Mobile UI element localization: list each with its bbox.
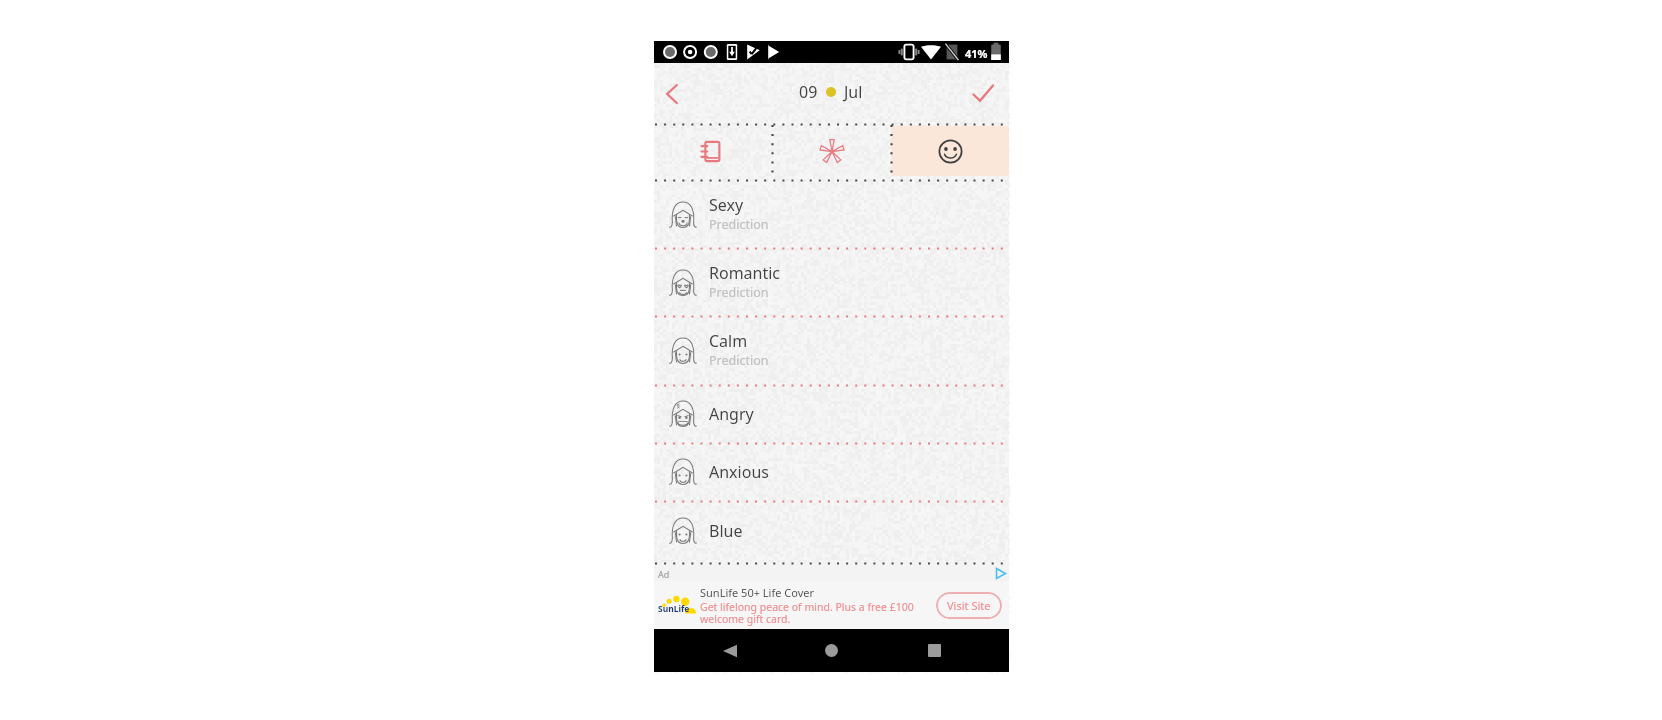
button[interactable]: Home — [809, 629, 853, 672]
button[interactable]: Symptoms — [773, 126, 891, 176]
button[interactable]: SunLife — [654, 581, 1009, 630]
staticText: Calm — [709, 330, 748, 352]
button[interactable]: Calm — [654, 316, 1009, 385]
button[interactable]: Save — [962, 72, 1006, 116]
staticText: SunLife 50+ Life Cover — [700, 585, 814, 600]
staticText: Sexy — [709, 194, 744, 216]
staticText: Blue — [709, 520, 743, 542]
button[interactable]: Recents — [912, 629, 956, 672]
staticText: Prediction — [709, 352, 769, 369]
button[interactable]: Blue — [654, 502, 1009, 560]
staticText: Ad — [658, 568, 670, 580]
button[interactable]: Mood — [891, 126, 1009, 176]
button[interactable]: Angry — [654, 385, 1009, 443]
button[interactable]: Visit Site — [936, 592, 1002, 619]
staticText: Get lifelong peace of mind. Plus a free … — [700, 600, 933, 626]
button[interactable]: Notes — [654, 126, 773, 176]
button[interactable]: Romantic — [654, 248, 1009, 317]
staticText: Prediction — [709, 216, 769, 233]
staticText: Romantic — [709, 262, 781, 284]
button[interactable]: Back — [650, 72, 694, 116]
button[interactable]: Anxious — [654, 443, 1009, 501]
staticText: Anxious — [709, 461, 769, 483]
button[interactable]: Back — [708, 629, 752, 672]
staticText: Visit Site — [947, 598, 991, 613]
staticText: SunLife — [658, 603, 690, 615]
staticText: Jul — [844, 81, 863, 103]
button[interactable]: Sexy — [654, 181, 1009, 248]
staticText: Angry — [709, 403, 754, 425]
staticText: 41% — [965, 46, 988, 61]
staticText: 09 — [799, 81, 818, 103]
staticText: Prediction — [709, 284, 769, 301]
